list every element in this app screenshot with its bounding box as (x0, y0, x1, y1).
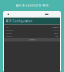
button[interactable]: Security (4, 32, 60, 35)
button[interactable]: Scan & Connect to WiFi (0, 0, 64, 11)
staticText: Security (6, 33, 12, 34)
button[interactable]: SSID (4, 26, 60, 29)
staticText: Scan & Connect to WiFi (15, 4, 48, 7)
staticText: HomeNet (52, 27, 58, 28)
staticText: Password (6, 30, 14, 31)
staticText: SSID (6, 27, 9, 28)
button[interactable]: Connect (4, 38, 60, 41)
staticText: •••••• (52, 30, 58, 31)
staticText: Auto (55, 36, 58, 37)
staticText: Wi-Fi Configuration (6, 19, 33, 23)
staticText: Connect (29, 39, 35, 41)
staticText: Channel (6, 36, 12, 37)
button[interactable]: Password (4, 29, 60, 32)
button[interactable]: Channel (4, 35, 60, 38)
staticText: WPA2 (54, 33, 58, 34)
